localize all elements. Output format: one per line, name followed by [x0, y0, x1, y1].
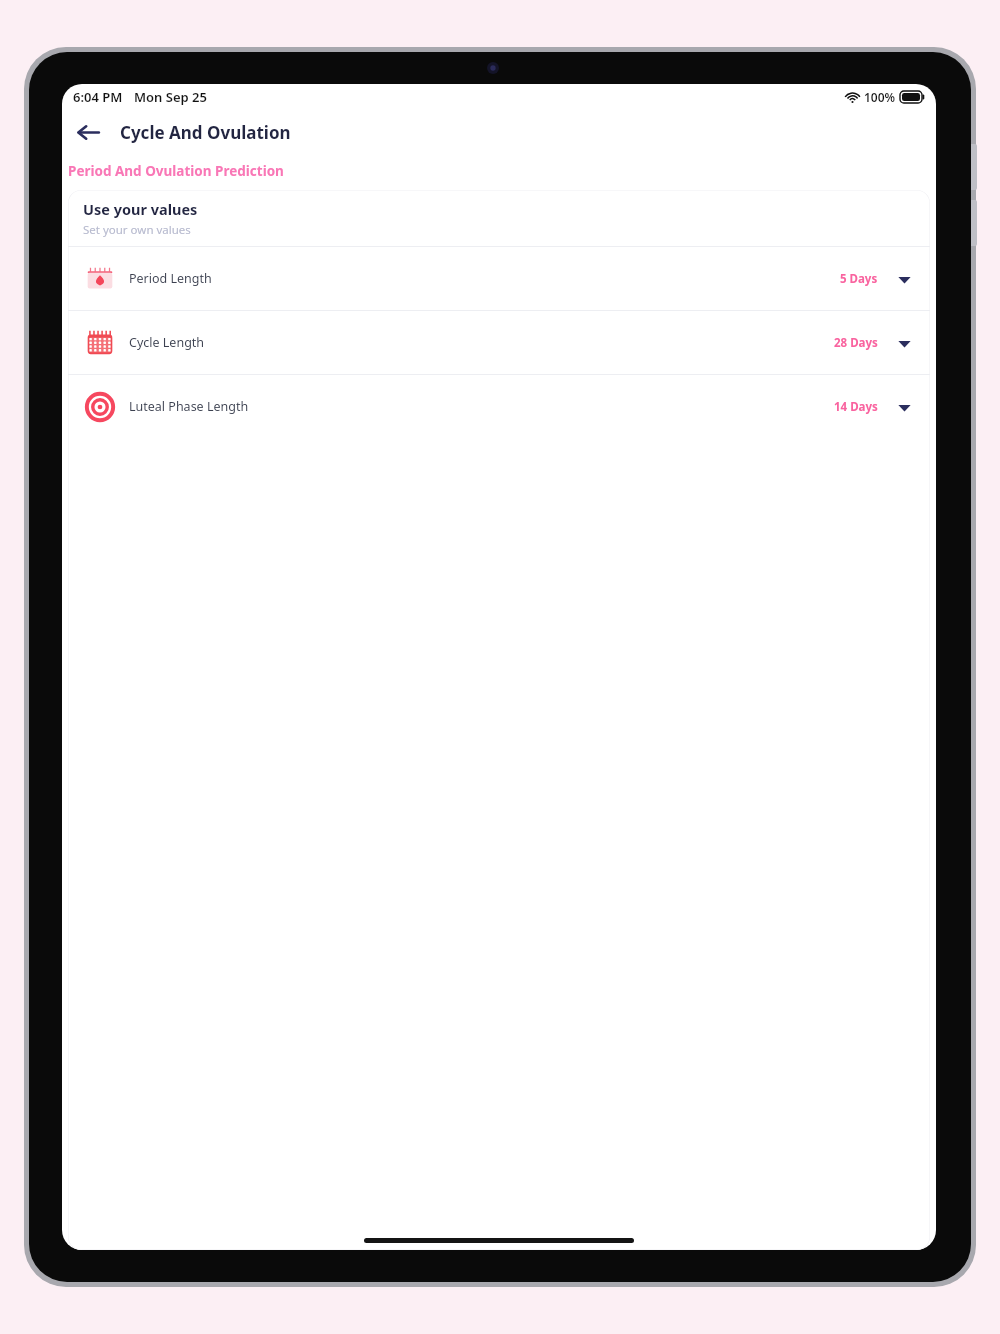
staticText: Set your own values — [83, 222, 191, 238]
staticText: 28 Days — [834, 335, 878, 351]
staticText: 5 Days — [840, 271, 878, 287]
button[interactable]: Cycle Length — [68, 311, 930, 374]
other: Change Luteal Phase Length — [895, 398, 913, 416]
staticText: Cycle Length — [129, 334, 205, 351]
other: Change Cycle Length — [895, 334, 913, 352]
staticText: Mon Sep 25 — [134, 88, 207, 106]
button[interactable]: Period Length — [68, 247, 930, 310]
staticText: Period And Ovulation Prediction — [68, 162, 284, 180]
staticText: Luteal Phase Length — [129, 398, 249, 415]
staticText: 100% — [864, 89, 896, 105]
button[interactable]: Back — [68, 112, 108, 152]
button[interactable]: Luteal Phase Length — [68, 375, 930, 438]
staticText: Use your values — [83, 199, 198, 219]
staticText: 14 Days — [834, 399, 878, 415]
staticText: Cycle And Ovulation — [120, 121, 291, 144]
other: Change Period Length — [895, 270, 913, 288]
staticText: 6:04 PM — [73, 88, 123, 106]
staticText: Period Length — [129, 270, 212, 287]
